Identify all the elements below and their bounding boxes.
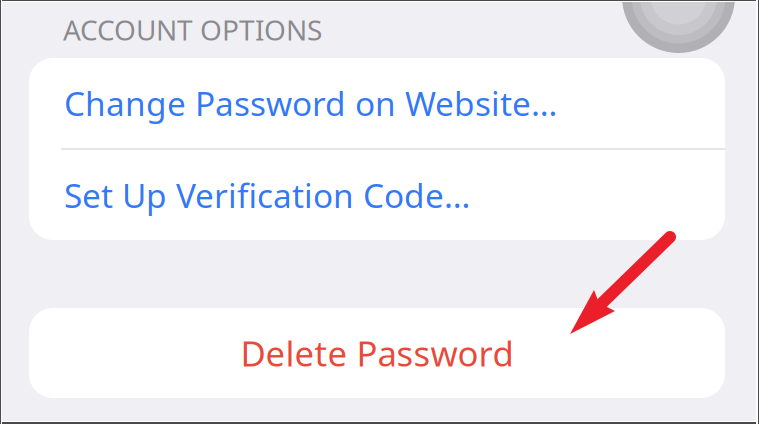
button[interactable]: Change Password on Website…: [29, 58, 725, 148]
button[interactable]: Delete Password: [29, 308, 725, 398]
staticText: Delete Password: [240, 330, 513, 376]
staticText: Change Password on Website…: [64, 81, 557, 125]
staticText: ACCOUNT OPTIONS: [63, 11, 322, 48]
button[interactable]: Set Up Verification Code…: [29, 150, 725, 240]
staticText: Set Up Verification Code…: [64, 173, 470, 217]
